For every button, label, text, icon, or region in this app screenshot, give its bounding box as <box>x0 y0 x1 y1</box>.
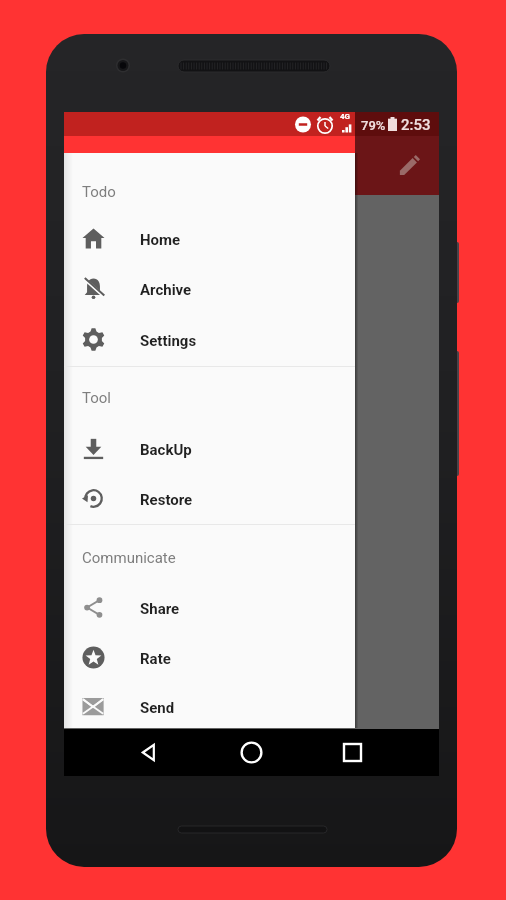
button[interactable]: Home <box>64 215 355 265</box>
staticText: BackUp <box>140 441 192 459</box>
staticText: Home <box>140 231 181 249</box>
button[interactable]: Home <box>229 729 273 776</box>
staticText: Todo <box>82 183 116 201</box>
staticText: Send <box>140 699 175 717</box>
staticText: Communicate <box>82 549 176 567</box>
button[interactable]: Settings <box>64 316 355 366</box>
button[interactable]: Restore <box>64 475 355 525</box>
button[interactable]: BackUp <box>64 425 355 475</box>
staticText: 4G <box>340 112 351 121</box>
staticText: Rate <box>140 650 171 668</box>
staticText: Archive <box>140 281 192 299</box>
staticText: 2:53 <box>401 116 431 134</box>
staticText: Settings <box>140 332 197 350</box>
staticText: Restore <box>140 491 193 509</box>
staticText: 79% <box>361 118 386 133</box>
button[interactable]: Edit <box>387 144 431 188</box>
button[interactable]: Rate <box>64 634 355 684</box>
staticText: Share <box>140 600 180 618</box>
staticText: Tool <box>82 389 111 407</box>
button[interactable]: Share <box>64 584 355 634</box>
button[interactable]: Back <box>126 729 170 776</box>
button[interactable]: Archive <box>64 265 355 315</box>
button[interactable]: Send <box>64 683 355 733</box>
button[interactable]: Recents <box>330 729 374 776</box>
